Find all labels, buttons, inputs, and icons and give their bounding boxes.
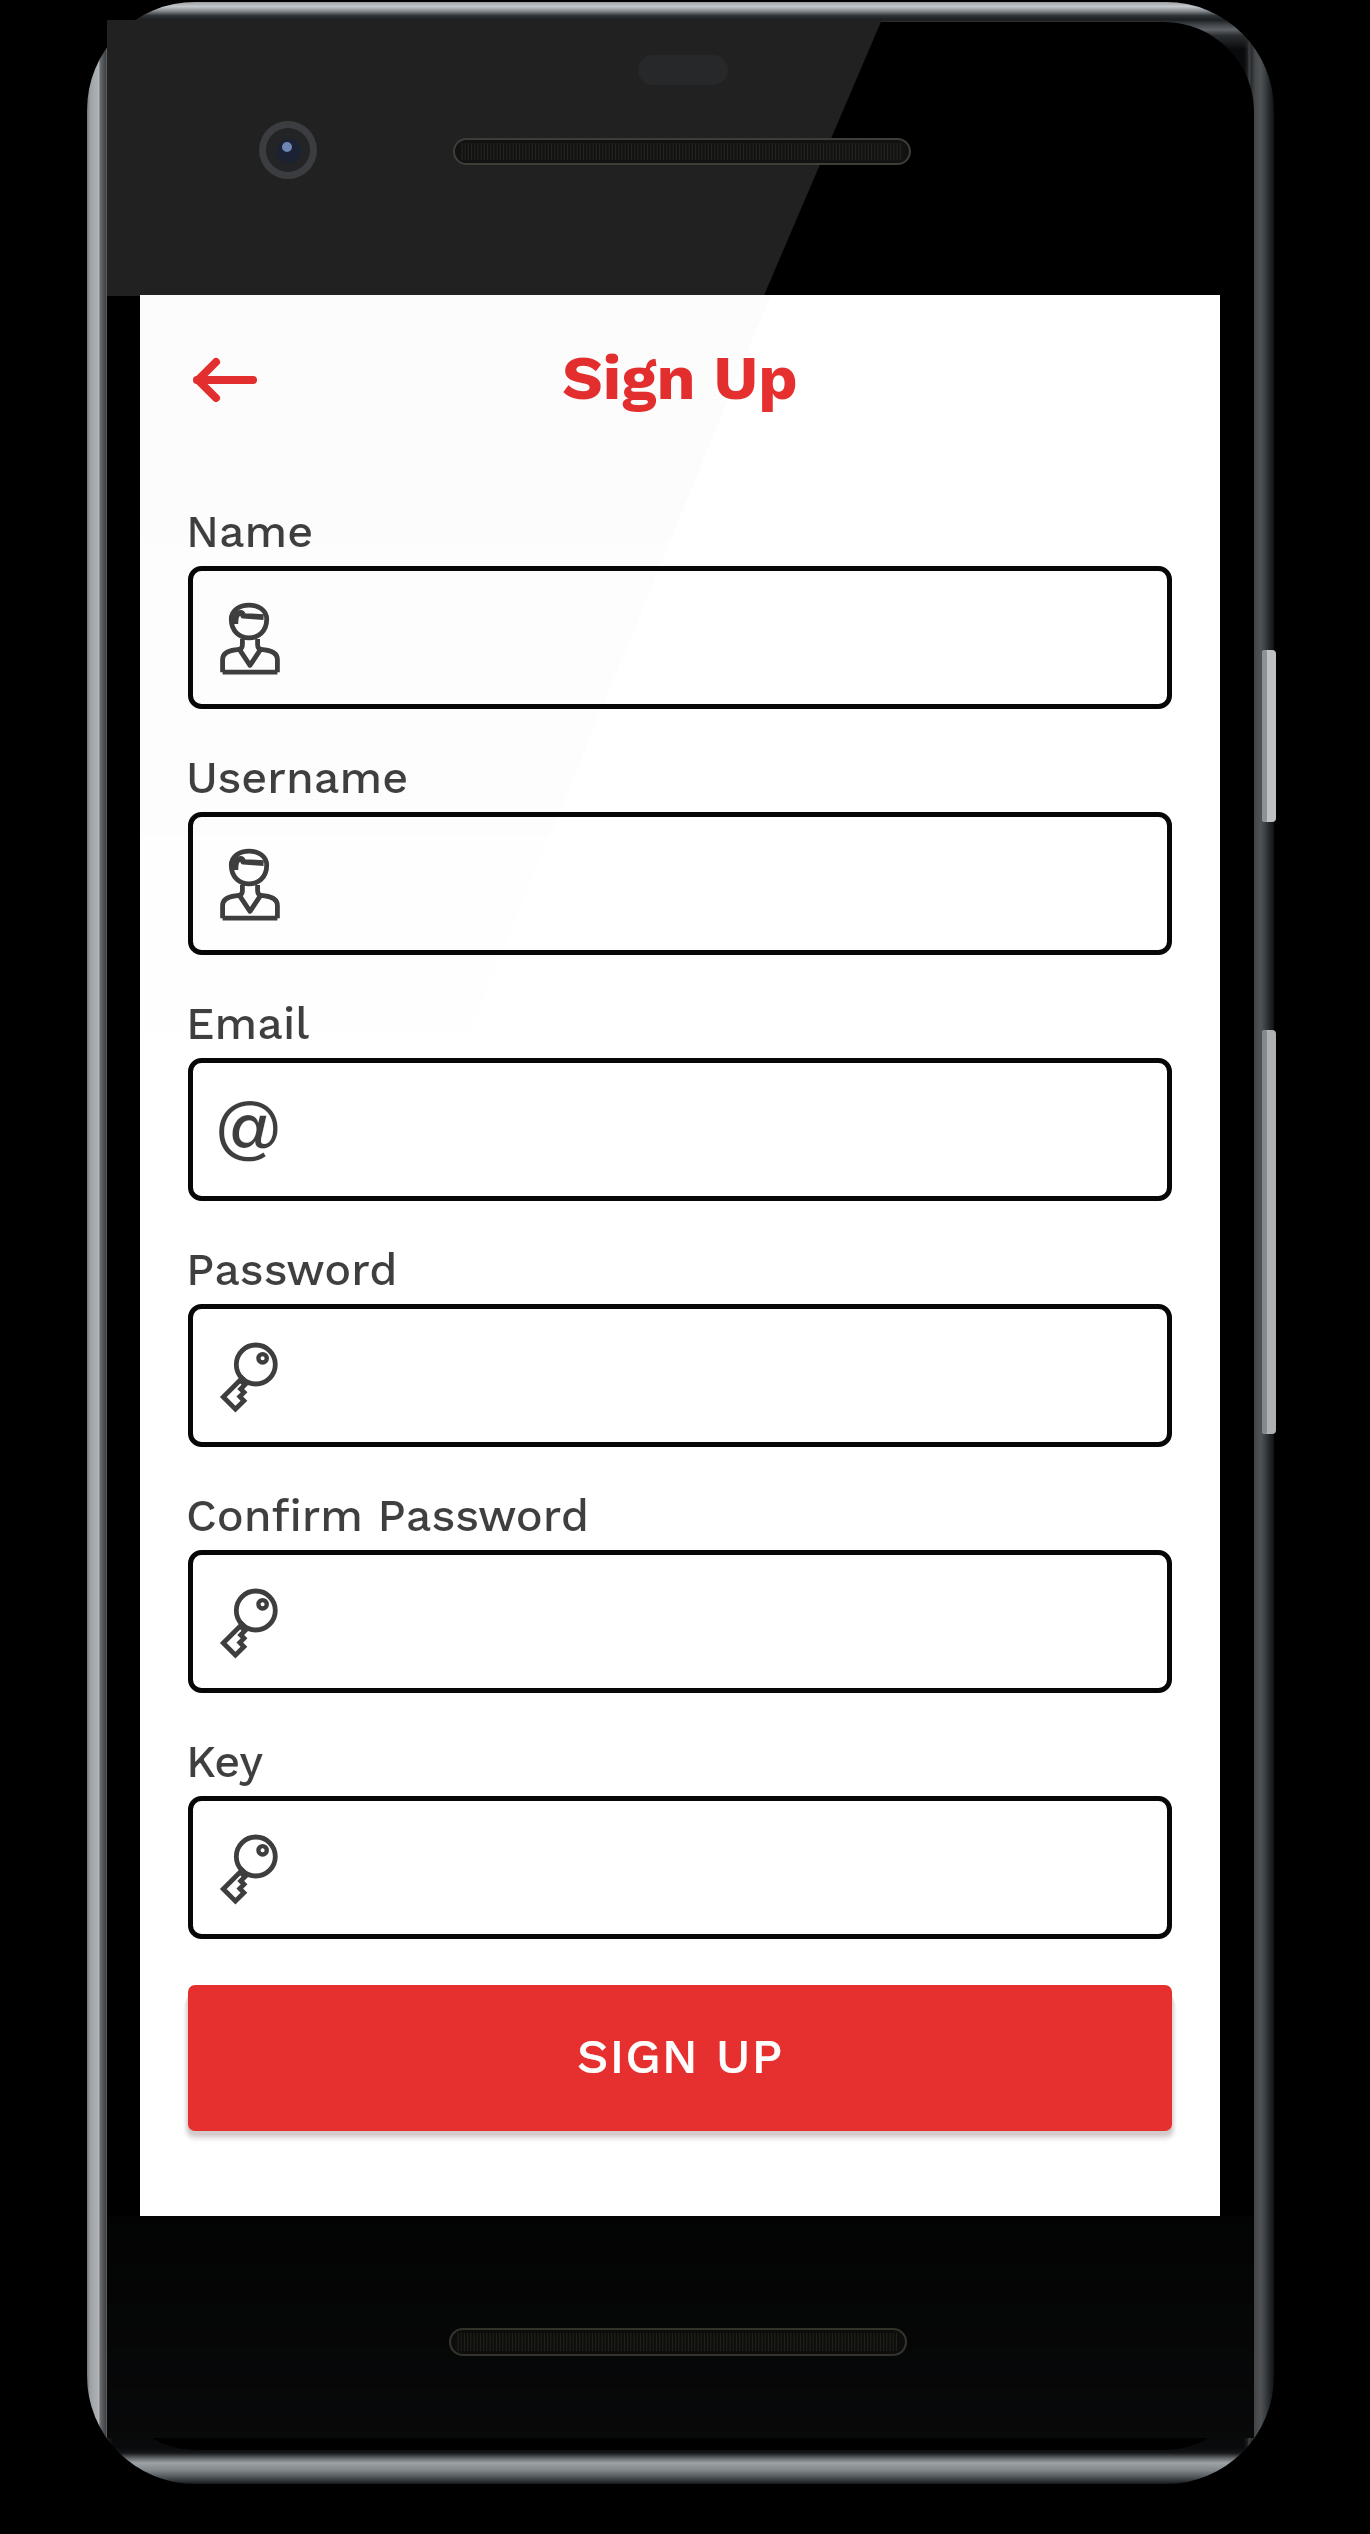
button[interactable]: @ <box>188 1058 1172 1201</box>
staticText: Username <box>186 751 409 804</box>
button[interactable]: SIGN UP <box>188 1985 1172 2131</box>
staticText: Email <box>186 997 310 1050</box>
button[interactable] <box>188 566 1172 709</box>
staticText: Password <box>186 1243 398 1296</box>
staticText: Name <box>186 505 314 558</box>
staticText: Key <box>186 1735 264 1788</box>
staticText: @ <box>215 1083 282 1165</box>
staticText: Confirm Password <box>186 1489 590 1542</box>
button[interactable]: Back <box>154 315 294 445</box>
staticText: Sign Up <box>140 340 1220 414</box>
button[interactable] <box>188 1796 1172 1939</box>
button[interactable] <box>188 1304 1172 1447</box>
button[interactable] <box>188 1550 1172 1693</box>
staticText: SIGN UP <box>577 2027 784 2084</box>
button[interactable] <box>188 812 1172 955</box>
